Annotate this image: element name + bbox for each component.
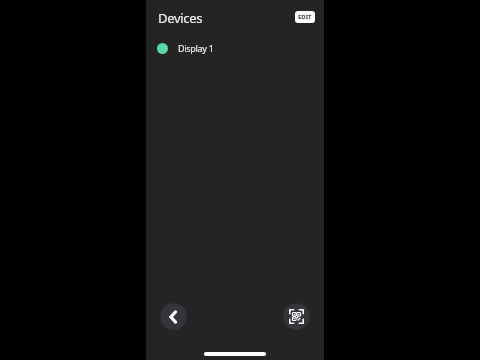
button[interactable]: EDIT (295, 11, 315, 23)
staticText: EDIT (298, 13, 312, 21)
staticText: Devices (158, 9, 203, 27)
button[interactable]: Display 1 (157, 42, 214, 54)
staticText: Display 1 (178, 42, 214, 54)
button[interactable] (159, 302, 188, 331)
button[interactable] (282, 302, 311, 331)
